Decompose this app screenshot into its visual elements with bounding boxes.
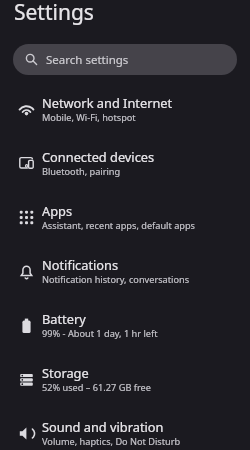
staticText: Settings: [14, 0, 94, 27]
staticText: 52% used – 61.27 GB free: [42, 381, 151, 394]
staticText: Sound and vibration: [42, 418, 164, 435]
button[interactable]: Storage: [0, 352, 250, 406]
button[interactable]: Search settings: [13, 44, 237, 75]
button[interactable]: Apps: [0, 190, 250, 244]
staticText: Connected devices: [42, 148, 155, 165]
button[interactable]: Sound and vibration: [0, 406, 250, 450]
staticText: Assistant, recent apps, default apps: [42, 219, 195, 232]
staticText: Notifications: [42, 256, 119, 273]
button[interactable]: Battery: [0, 298, 250, 352]
staticText: Battery: [42, 310, 86, 327]
staticText: Mobile, Wi-Fi, hotspot: [42, 111, 136, 124]
staticText: 99% - About 1 day, 1 hr left: [42, 327, 158, 340]
button[interactable]: Notifications: [0, 244, 250, 298]
staticText: Volume, haptics, Do Not Disturb: [42, 435, 181, 448]
staticText: Network and Internet: [42, 94, 173, 111]
button[interactable]: Connected devices: [0, 136, 250, 190]
button[interactable]: Network and Internet: [0, 82, 250, 136]
staticText: Notification history, conversations: [42, 273, 190, 286]
staticText: Bluetooth, pairing: [42, 165, 121, 178]
staticText: Apps: [42, 202, 73, 219]
staticText: Storage: [42, 364, 89, 381]
staticText: Search settings: [46, 52, 129, 68]
